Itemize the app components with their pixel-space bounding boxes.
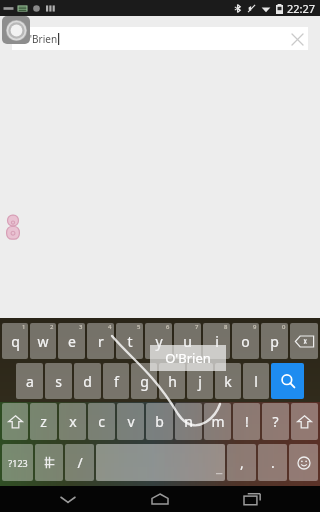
staticText: 1	[22, 323, 26, 331]
staticText: ?123	[8, 457, 28, 469]
button[interactable]: m	[204, 403, 231, 440]
button[interactable]: h	[159, 363, 185, 399]
staticText: 9	[253, 323, 257, 331]
button[interactable]: Shift	[2, 403, 28, 440]
button[interactable]: ,	[227, 444, 256, 481]
staticText: k	[224, 372, 232, 391]
staticText: v	[127, 412, 135, 431]
button[interactable]: Emoji	[289, 444, 318, 481]
button[interactable]: O'Brien	[12, 27, 308, 50]
staticText: a	[26, 372, 34, 391]
staticText: o	[241, 332, 250, 351]
button[interactable]: Shift	[291, 403, 318, 440]
staticText: 2	[50, 323, 54, 331]
staticText: O'Brien	[22, 32, 58, 46]
staticText: .	[271, 453, 275, 472]
staticText: n	[184, 412, 193, 431]
staticText: p	[270, 332, 279, 351]
staticText: 3	[79, 323, 83, 331]
button[interactable]: x	[59, 403, 86, 440]
staticText: q	[11, 332, 20, 351]
button[interactable]: ?	[262, 403, 289, 440]
staticText: 5	[137, 323, 141, 331]
button[interactable]: d	[74, 363, 101, 399]
staticText: t	[127, 332, 133, 351]
button[interactable]: r	[87, 323, 114, 359]
staticText: s	[55, 372, 62, 391]
button[interactable]: v	[117, 403, 144, 440]
button[interactable]: Home	[136, 486, 184, 512]
button[interactable]: f	[103, 363, 129, 399]
staticText: x	[69, 412, 77, 431]
button[interactable]: Language	[35, 444, 63, 481]
staticText: 6	[166, 323, 170, 331]
button[interactable]: a	[16, 363, 43, 399]
staticText: h	[168, 372, 177, 391]
button[interactable]: l	[243, 363, 269, 399]
button[interactable]: t	[116, 323, 143, 359]
staticText: b	[155, 412, 164, 431]
button[interactable]: w	[30, 323, 56, 359]
staticText: 0	[282, 323, 286, 331]
button[interactable]: z	[30, 403, 57, 440]
staticText: /	[77, 453, 83, 472]
staticText: i	[215, 332, 219, 351]
button[interactable]: O'Brien	[150, 345, 226, 371]
staticText: 8	[224, 323, 228, 331]
staticText: m	[211, 412, 225, 431]
staticText: 22:27	[287, 1, 316, 16]
staticText: l	[254, 372, 258, 391]
button[interactable]: Search	[271, 363, 304, 399]
staticText: ?	[272, 412, 279, 431]
staticText: O'Brien	[165, 349, 211, 367]
button[interactable]: n	[175, 403, 202, 440]
button[interactable]: c	[88, 403, 115, 440]
button[interactable]: k	[215, 363, 241, 399]
button[interactable]: Space	[96, 444, 225, 481]
button[interactable]: Hide keyboard	[44, 486, 92, 512]
button[interactable]: q	[2, 323, 28, 359]
staticText: 7	[195, 323, 199, 331]
staticText: r	[98, 332, 104, 351]
button[interactable]: ?123	[2, 444, 33, 481]
staticText: !	[245, 412, 249, 431]
button[interactable]: o	[232, 323, 259, 359]
button[interactable]: y	[145, 323, 172, 359]
staticText: c	[98, 412, 105, 431]
staticText: f	[114, 372, 119, 391]
button[interactable]: j	[187, 363, 213, 399]
button[interactable]: p	[261, 323, 288, 359]
staticText: 4	[108, 323, 112, 331]
staticText: u	[183, 332, 192, 351]
button[interactable]: u	[174, 323, 201, 359]
button[interactable]: !	[233, 403, 260, 440]
button[interactable]: App icon	[2, 16, 30, 44]
staticText: y	[155, 332, 163, 351]
button[interactable]: .	[258, 444, 287, 481]
button[interactable]: s	[45, 363, 72, 399]
staticText: w	[37, 332, 49, 351]
staticText: d	[83, 372, 92, 391]
button[interactable]: Backspace	[290, 323, 318, 359]
button[interactable]: Clear search	[286, 28, 308, 50]
staticText: e	[68, 332, 76, 351]
staticText: ,	[240, 453, 244, 472]
staticText: z	[40, 412, 47, 431]
button[interactable]: Recent apps	[228, 486, 276, 512]
button[interactable]: b	[146, 403, 173, 440]
button[interactable]: g	[131, 363, 157, 399]
staticText: g	[140, 372, 149, 391]
button[interactable]: e	[58, 323, 85, 359]
button[interactable]: i	[203, 323, 230, 359]
staticText: j	[198, 372, 202, 391]
button[interactable]: /	[65, 444, 94, 481]
